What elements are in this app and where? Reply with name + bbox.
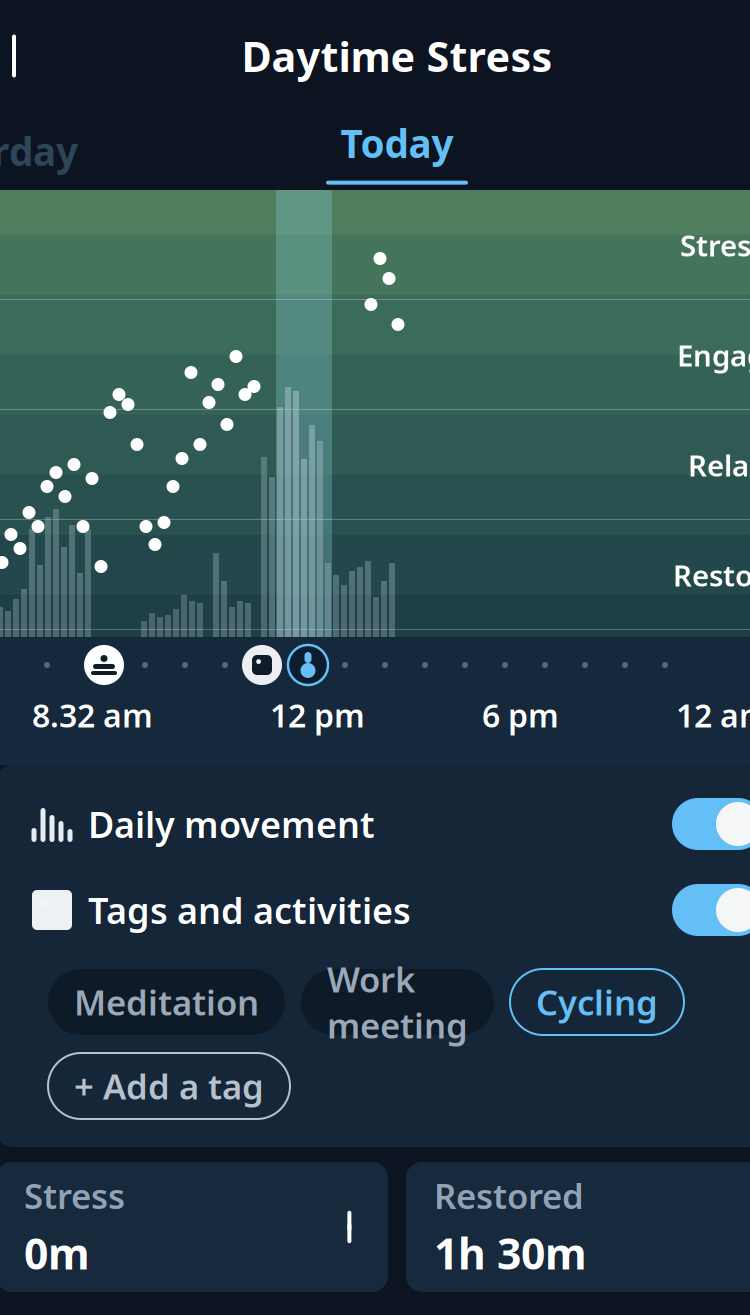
staticText: Relaxed	[688, 445, 750, 484]
staticText: rday	[0, 125, 78, 177]
staticText: Restored	[434, 1173, 584, 1219]
button[interactable]: Daily movement	[0, 781, 750, 867]
button[interactable]: + Add a tag	[48, 1053, 290, 1119]
staticText: Stress	[24, 1173, 125, 1219]
staticText: Daily movement	[88, 800, 375, 848]
button[interactable]: Meditation	[48, 969, 285, 1035]
button[interactable]: Cycling	[510, 969, 684, 1035]
staticText: Work meeting	[327, 956, 468, 1048]
button[interactable]: Stress	[0, 1162, 388, 1292]
staticText: Cycling	[536, 979, 658, 1025]
button[interactable]: Tags and activities	[0, 867, 750, 953]
staticText: Tags and activities	[88, 886, 411, 934]
staticText: + Add a tag	[74, 1063, 264, 1109]
staticText: Today	[340, 117, 453, 169]
staticText: Daytime Stress	[241, 29, 552, 83]
staticText: 12 am	[676, 694, 750, 736]
staticText: 0m	[24, 1225, 90, 1281]
staticText: 6 pm	[482, 694, 559, 736]
staticText: Stressed	[680, 225, 750, 264]
staticText: 1h 30m	[434, 1225, 587, 1281]
staticText: Restored	[673, 555, 750, 594]
staticText: 12 pm	[270, 694, 365, 736]
button[interactable]: rday	[0, 116, 78, 186]
button[interactable]: Restored	[406, 1162, 750, 1292]
button[interactable]: Today	[326, 116, 468, 186]
staticText: Engaged	[677, 335, 750, 374]
staticText: Meditation	[74, 979, 259, 1025]
button[interactable]: Work meeting	[301, 969, 494, 1035]
staticText: 8.32 am	[32, 694, 153, 736]
button[interactable]: Back	[0, 26, 48, 86]
